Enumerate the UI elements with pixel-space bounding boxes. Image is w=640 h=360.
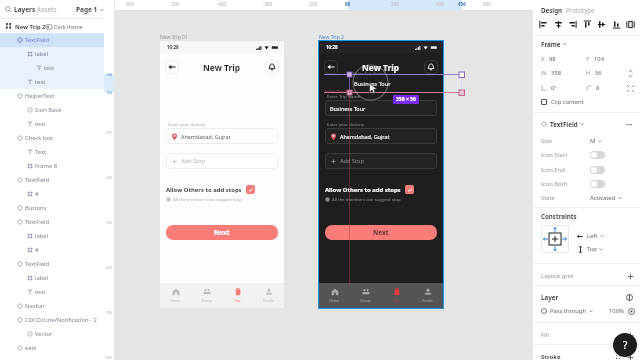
button[interactable]: TextField [0,33,104,47]
button[interactable]: W [541,69,561,77]
staticText: Group [360,298,371,303]
button[interactable]: New Trip 2 [0,19,104,33]
button[interactable]: Design [541,6,563,14]
button[interactable]: Group [191,283,222,308]
button[interactable]: Align option [611,19,621,29]
staticText: 100% [609,307,624,315]
staticText: ? [623,338,628,352]
staticText: W [541,69,547,77]
button[interactable]: HelperText [0,89,104,103]
button[interactable]: Help [613,333,637,357]
button[interactable]: Ahemdabad, Gujrat [325,128,437,144]
button[interactable]: Blend [626,294,633,301]
button[interactable]: Align option [625,19,635,29]
button[interactable]: Top [577,245,603,253]
button[interactable]: Align option [582,19,592,29]
button[interactable]: Navbar [0,299,104,313]
staticText: Ahemdabad, Gujrat [181,133,231,140]
staticText: label [35,274,49,282]
button[interactable]: Buttons [0,201,104,215]
button[interactable]: Trip [381,283,412,308]
button[interactable]: Frame 8 [0,159,104,173]
button[interactable]: Pass through [550,307,587,315]
button[interactable]: text [0,75,104,89]
button[interactable]: text [0,61,104,75]
button[interactable]: Notifications [424,60,438,74]
button[interactable]: Toggle visibility [628,308,635,315]
button[interactable]: Left [577,232,604,240]
staticText: Add Stop [340,157,364,165]
button[interactable]: Activated [590,194,622,202]
button[interactable]: Text [0,145,104,159]
button[interactable]: # [0,187,104,201]
button[interactable]: Prototype [566,6,595,14]
button[interactable]: Check box [0,131,104,145]
staticText: Stroke [541,353,561,360]
button[interactable]: Profile [412,283,443,308]
button[interactable]: Align option [596,19,606,29]
button[interactable]: label [0,47,104,61]
staticText: TextField [25,218,49,226]
button[interactable]: text [0,117,104,131]
button[interactable]: Business Tour [325,100,437,116]
button[interactable]: 0° [541,84,557,92]
button[interactable]: Group [350,283,381,308]
button[interactable]: Notifications [265,60,279,74]
button[interactable]: Frame [541,40,567,48]
button[interactable]: text [0,285,104,299]
button[interactable]: Icon Base [0,103,104,117]
button[interactable]: Lock ratio [626,69,635,78]
button[interactable]: Clip content [541,98,584,106]
button[interactable]: Stroke [541,351,634,360]
button[interactable]: Home [319,283,350,308]
button[interactable]: TextField [0,215,104,229]
button[interactable]: Next [166,225,278,240]
button[interactable]: Align option [538,19,548,29]
button[interactable]: Allow Others to add stops [325,184,414,195]
button[interactable]: label [0,229,104,243]
staticText: ••• [626,121,633,128]
button[interactable]: label [0,271,104,285]
button[interactable]: Back [165,60,179,74]
button[interactable]: Back [324,60,338,74]
button[interactable]: TextField [0,173,104,187]
other: Allow others to add stops [246,185,255,194]
staticText: Allow Others to add stops [166,186,242,194]
button[interactable]: Icon End [590,166,605,174]
button[interactable]: Assets [37,5,57,14]
staticText: 358 × 56 [396,96,416,103]
button[interactable]: Allow Others to add stops [166,184,255,195]
button[interactable]: Profile [253,283,284,308]
button[interactable]: H [586,69,602,77]
button[interactable]: COCO/Line/Notification - 2 [0,313,104,327]
button[interactable]: Add Stop [325,153,437,169]
button[interactable]: Page 1 [76,5,104,14]
button[interactable]: Next [325,225,437,240]
button[interactable]: X [541,55,556,63]
button[interactable]: 8 [586,84,600,92]
staticText: Enter Trip Name [353,71,386,77]
button[interactable]: Y [586,55,604,63]
button[interactable]: TextField [541,120,633,128]
button[interactable]: Icon Both [590,180,605,188]
button[interactable]: Constraints [541,225,569,253]
button[interactable]: Trip [222,283,253,308]
button[interactable]: TextField [0,257,104,271]
button[interactable]: Layers [14,5,36,14]
button[interactable]: Resize [626,84,635,93]
button[interactable]: east [0,341,104,355]
button[interactable]: # [0,243,104,257]
button[interactable]: Home [160,283,191,308]
button[interactable]: Align option [553,19,563,29]
button[interactable]: Icon Start [590,151,605,159]
button[interactable]: M [590,137,602,145]
button[interactable]: Layout grid [541,270,634,282]
staticText: Check box [25,134,53,142]
button[interactable]: Add Stop [166,153,278,169]
button[interactable]: Vector [0,327,104,341]
button[interactable]: Fill [541,329,634,341]
button[interactable]: Ahemdabad, Gujrat [166,128,278,144]
button[interactable]: Search [4,5,12,13]
staticText: text [44,64,55,72]
button[interactable]: Align option [567,19,577,29]
